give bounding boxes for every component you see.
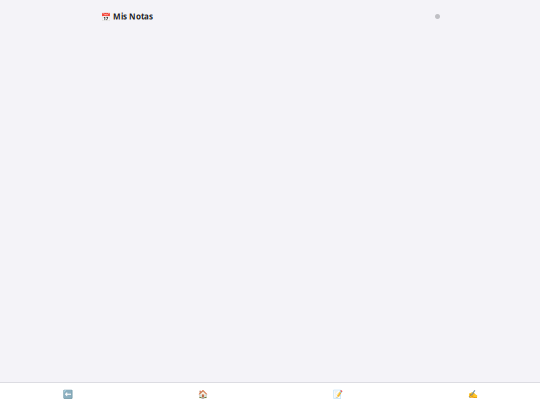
staticText: 📝 bbox=[332, 389, 342, 398]
button[interactable]: 📅 Mis Notas bbox=[101, 11, 153, 22]
staticText: ✍️ bbox=[467, 389, 477, 398]
button[interactable]: More options bbox=[435, 14, 440, 19]
staticText: 🏠 bbox=[197, 389, 207, 398]
staticText: 📅 Mis Notas bbox=[101, 11, 153, 22]
button[interactable]: Home bbox=[135, 383, 270, 405]
button[interactable]: Back bbox=[0, 383, 135, 405]
button[interactable]: Write bbox=[405, 383, 540, 405]
button[interactable]: Notes bbox=[270, 383, 405, 405]
staticText: ⬅️ bbox=[62, 389, 72, 398]
